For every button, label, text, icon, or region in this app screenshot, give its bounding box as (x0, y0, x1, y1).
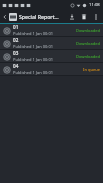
staticText: Published 1 Jan 00:01 (13, 70, 53, 75)
button[interactable]: 03 (0, 50, 103, 62)
staticText: Special Report... (19, 13, 59, 20)
staticText: In queue (83, 67, 101, 72)
staticText: Downloaded (76, 28, 101, 33)
staticText: Downloaded (76, 54, 101, 59)
staticText: Published 1 Jan 00:01 (13, 31, 53, 36)
staticText: Published 1 Jan 00:01 (13, 44, 53, 49)
button[interactable]: 01 (0, 24, 103, 36)
button[interactable]: More options (90, 11, 102, 23)
button[interactable]: 04 (0, 63, 103, 75)
staticText: Downloaded (76, 41, 101, 46)
staticText: 04 (13, 63, 19, 69)
button[interactable]: Download (66, 11, 78, 23)
button[interactable]: 02 (0, 37, 103, 49)
button[interactable]: Delete (78, 11, 90, 23)
staticText: 02 (13, 37, 19, 43)
staticText: 11:08 (89, 2, 100, 8)
staticText: 01 (13, 24, 19, 30)
staticText: Published 1 Jan 00:01 (13, 57, 53, 62)
button[interactable]: Back (0, 12, 9, 21)
staticText: 03 (13, 50, 19, 56)
